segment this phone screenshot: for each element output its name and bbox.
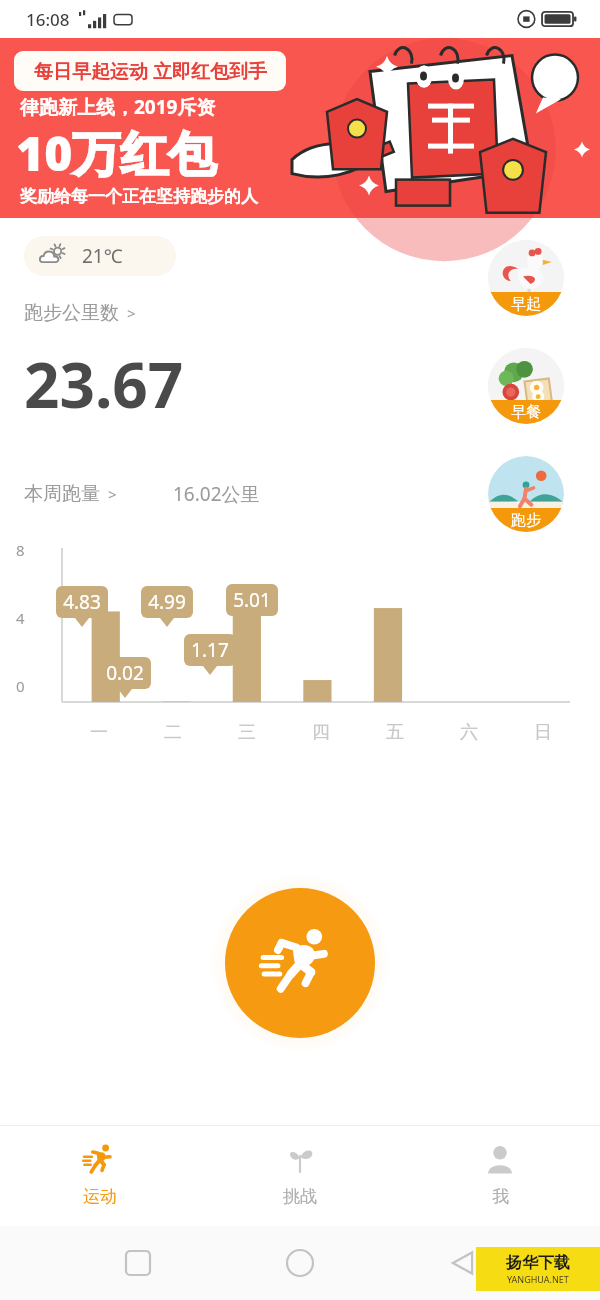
- staticText: 挑战: [283, 1186, 317, 1207]
- staticText: 四: [312, 721, 330, 744]
- button[interactable]: 早餐: [488, 348, 564, 424]
- staticText: 4: [16, 608, 25, 628]
- button[interactable]: Recents: [114, 1239, 162, 1287]
- button[interactable]: 21℃: [24, 236, 176, 276]
- staticText: 二: [164, 721, 182, 744]
- staticText: 三: [238, 721, 256, 744]
- staticText: 4.83: [63, 589, 101, 615]
- button[interactable]: 开始跑步: [225, 888, 375, 1038]
- staticText: 本周跑量: [24, 482, 100, 506]
- staticText: 律跑新上线，2019斥资: [20, 94, 216, 120]
- staticText: 16:08: [26, 8, 70, 31]
- staticText: 跑步: [511, 511, 541, 530]
- staticText: 一: [90, 721, 108, 744]
- staticText: 日: [534, 721, 552, 744]
- staticText: >: [123, 303, 136, 323]
- staticText: 运动: [83, 1186, 117, 1207]
- staticText: 23.67: [24, 342, 184, 426]
- button[interactable]: 运动: [0, 1126, 200, 1207]
- button[interactable]: 挑战: [200, 1126, 400, 1207]
- staticText: 五: [386, 721, 404, 744]
- staticText: 每日早起运动 立即红包到手: [34, 58, 267, 84]
- button[interactable]: 早起: [488, 240, 564, 316]
- staticText: 早起: [511, 295, 541, 314]
- staticText: 六: [460, 721, 478, 744]
- staticText: 16.02公里: [173, 481, 260, 507]
- button[interactable]: 跑步: [488, 456, 564, 532]
- staticText: 10万红包: [16, 120, 217, 186]
- staticText: 早餐: [511, 403, 541, 422]
- staticText: 跑步公里数: [24, 301, 119, 325]
- staticText: 5.01: [233, 587, 271, 613]
- button[interactable]: 我: [400, 1126, 600, 1207]
- staticText: 1.17: [191, 637, 229, 663]
- staticText: 8: [16, 540, 25, 560]
- button[interactable]: 每日早起运动 立即红包到手: [0, 38, 600, 218]
- staticText: >: [104, 484, 117, 504]
- staticText: 扬华下载: [506, 1253, 570, 1273]
- button[interactable]: 跑步公里数: [24, 298, 136, 328]
- staticText: 0: [16, 676, 25, 696]
- staticText: YANGHUA.NET: [507, 1273, 569, 1285]
- staticText: 0.02: [106, 660, 144, 686]
- staticText: 奖励给每一个正在坚持跑步的人: [20, 186, 258, 207]
- staticText: 我: [492, 1186, 509, 1207]
- button[interactable]: 本周跑量: [24, 482, 117, 506]
- staticText: 21℃: [82, 243, 123, 269]
- button[interactable]: Back: [438, 1239, 486, 1287]
- staticText: 4.99: [148, 589, 186, 615]
- button[interactable]: Home: [276, 1239, 324, 1287]
